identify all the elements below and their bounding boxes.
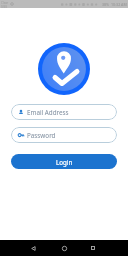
button[interactable]: Login — [11, 154, 117, 169]
staticText: Email Address — [27, 108, 69, 117]
staticText: 38% — [102, 2, 110, 7]
staticText: 10:32 AM — [111, 2, 127, 7]
button[interactable]: Home — [56, 240, 72, 256]
button[interactable]: Back — [25, 240, 41, 256]
staticText: 0/45 — [1, 5, 8, 9]
staticText: Clear — [1, 1, 9, 5]
staticText: Login — [56, 158, 73, 166]
button[interactable]: Recent apps — [85, 240, 101, 256]
staticText: Password — [27, 131, 56, 140]
button[interactable]: Password — [11, 127, 117, 143]
button[interactable]: Email Address — [11, 104, 117, 120]
